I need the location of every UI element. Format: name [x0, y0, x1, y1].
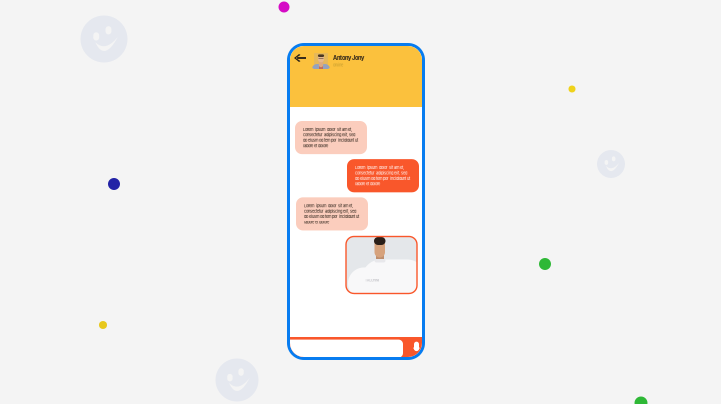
staticText: Lorem ipsum dolor sit amet, consectetur …: [303, 127, 358, 148]
staticText: online: [333, 63, 343, 67]
staticText: Lorem ipsum dolor sit amet, consectetur …: [355, 165, 410, 186]
staticText: Lorem ipsum dolor sit amet, consectetur …: [304, 203, 359, 224]
staticText: Antony Jony: [333, 55, 364, 61]
button[interactable]: Record voice message: [290, 337, 295, 348]
button[interactable]: Photo message: [346, 236, 417, 293]
button[interactable]: Back: [293, 53, 307, 69]
staticText: TACCHINI: [365, 278, 379, 282]
button[interactable]: Message input field: [290, 337, 409, 355]
